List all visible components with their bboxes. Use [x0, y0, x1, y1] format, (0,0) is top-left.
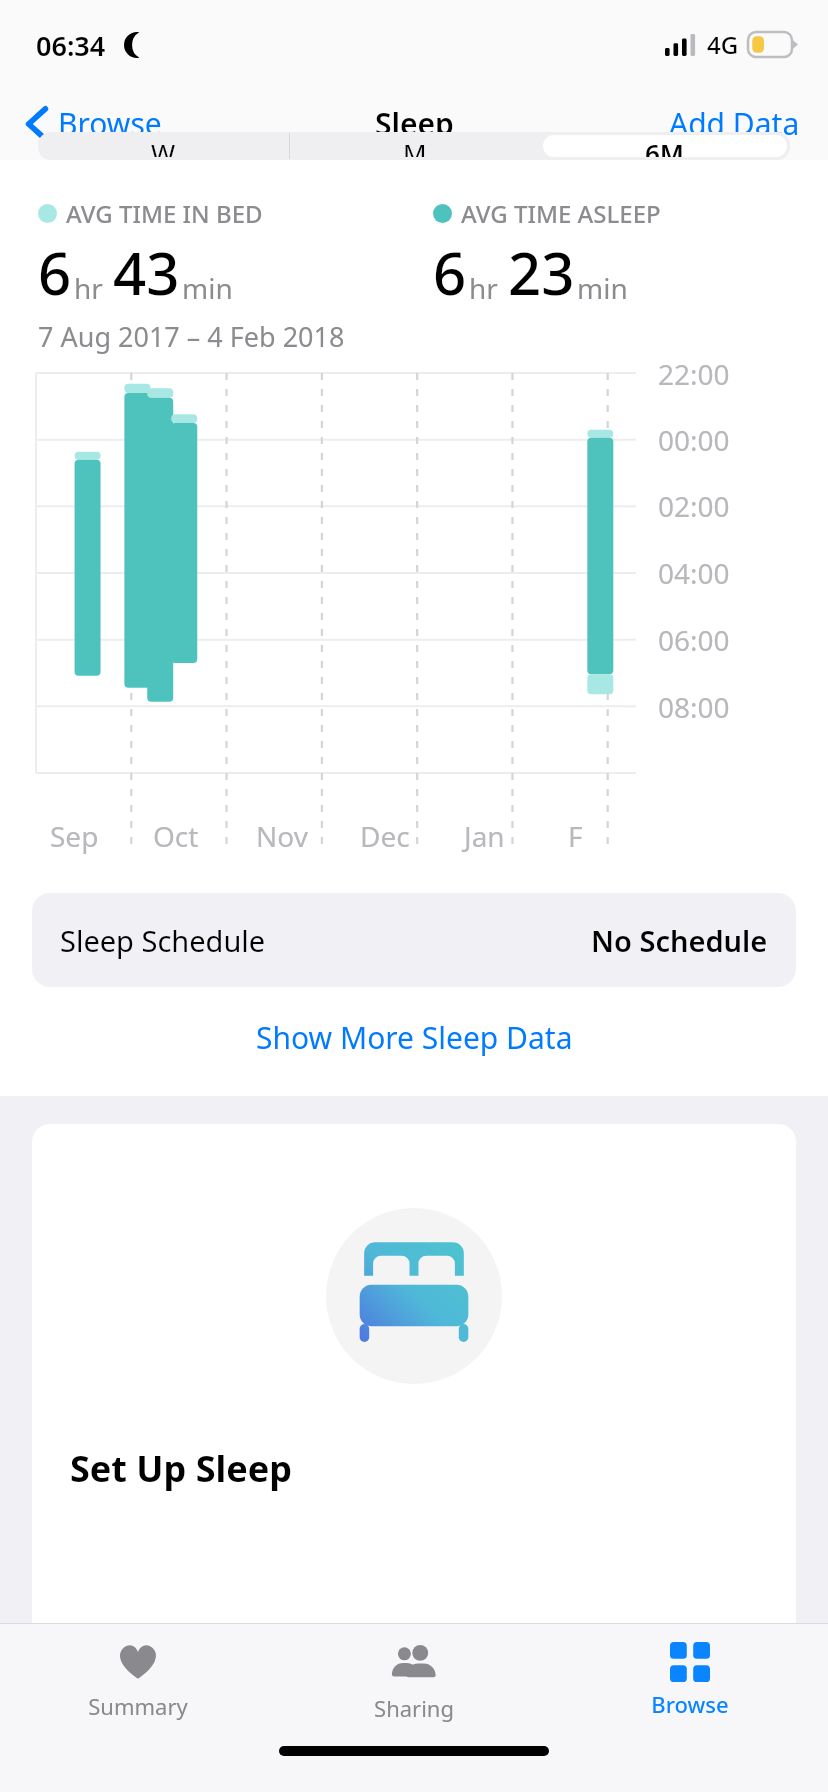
staticText: 00:00 [658, 421, 730, 459]
button[interactable]: Set Up Sleep [32, 1124, 796, 1792]
staticText: 08:00 [658, 688, 730, 726]
staticText: 6M [645, 135, 685, 157]
staticText: min [182, 269, 233, 307]
button[interactable]: M [293, 135, 537, 157]
button[interactable]: W [41, 135, 286, 157]
staticText: 4G [707, 28, 739, 61]
staticText: 6 [433, 233, 467, 312]
staticText: 6 [38, 233, 72, 312]
other: Summary [116, 1640, 160, 1684]
staticText: Nov [256, 817, 308, 855]
button[interactable]: Browse [552, 1624, 828, 1736]
other: Browse [670, 1642, 710, 1682]
staticText: Summary [88, 1691, 188, 1721]
staticText: Show More Sleep Data [256, 1017, 573, 1058]
staticText: 23 [508, 233, 575, 312]
staticText: AVG TIME ASLEEP [461, 197, 661, 230]
staticText: Sep [50, 817, 99, 855]
staticText: Set Up Sleep [70, 1444, 796, 1493]
staticText: 06:00 [658, 621, 730, 659]
button[interactable]: Show More Sleep Data [0, 1009, 828, 1066]
staticText: Browse [651, 1689, 729, 1719]
staticText: Sleep Schedule [60, 921, 266, 960]
button[interactable]: Add Data [665, 97, 804, 150]
button[interactable]: Sleep Schedule [32, 893, 796, 987]
button[interactable]: Browse [22, 97, 166, 150]
staticText: min [577, 269, 628, 307]
staticText: Sleep [375, 103, 454, 144]
staticText: No Schedule [591, 921, 768, 960]
staticText: 7 Aug 2017 – 4 Feb 2018 [38, 318, 345, 355]
staticText: Oct [153, 817, 199, 855]
staticText: hr [469, 269, 498, 307]
staticText: 02:00 [658, 487, 730, 525]
staticText: AVG TIME IN BED [66, 197, 263, 230]
staticText: Sharing [374, 1693, 454, 1723]
staticText: F [568, 817, 583, 855]
staticText: 04:00 [658, 554, 730, 592]
other: Sharing [390, 1638, 438, 1686]
button[interactable]: 6M [543, 135, 787, 157]
staticText: Add Data [669, 103, 800, 144]
staticText: 43 [113, 233, 180, 312]
staticText: M [403, 135, 427, 157]
staticText: 06:34 [36, 27, 106, 64]
button[interactable]: Sharing [276, 1624, 552, 1736]
staticText: Dec [360, 817, 410, 855]
staticText: 22:00 [658, 355, 730, 393]
button[interactable]: Summary [0, 1624, 276, 1736]
staticText: Browse [58, 103, 162, 144]
staticText: hr [74, 269, 103, 307]
staticText: Jan [464, 817, 505, 855]
staticText: W [151, 135, 176, 157]
